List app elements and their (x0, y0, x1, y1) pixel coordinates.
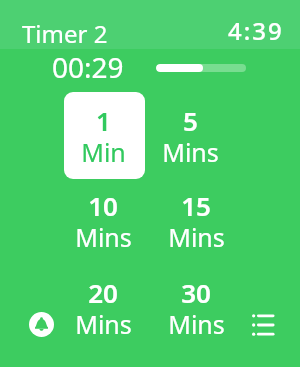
staticText: Mins (75, 307, 132, 341)
staticText: 30 (181, 275, 211, 310)
staticText: Min (81, 135, 126, 169)
button[interactable]: 15 (151, 177, 241, 264)
staticText: 1 (96, 103, 111, 138)
staticText: 20 (88, 275, 118, 310)
staticText: Mins (75, 220, 132, 254)
staticText: 10 (88, 188, 118, 223)
staticText: 5 (183, 103, 198, 138)
button[interactable]: 30 (151, 264, 241, 351)
staticText: 00:29 (52, 48, 124, 86)
button[interactable]: Alarm sound (29, 312, 54, 337)
button[interactable]: 20 (58, 264, 148, 351)
button[interactable]: 4:39 (218, 6, 288, 42)
staticText: Mins (168, 220, 225, 254)
button[interactable]: 5 (145, 92, 235, 179)
staticText: Mins (162, 135, 219, 169)
staticText: Timer 2 (22, 17, 108, 50)
staticText: 15 (181, 188, 211, 223)
staticText: Mins (168, 307, 225, 341)
staticText: 4:39 (228, 14, 284, 47)
button[interactable]: Timer list (250, 312, 276, 338)
button[interactable]: 1 (58, 92, 148, 179)
button[interactable]: 10 (58, 177, 148, 264)
button[interactable]: Timer 2 (12, 6, 112, 42)
